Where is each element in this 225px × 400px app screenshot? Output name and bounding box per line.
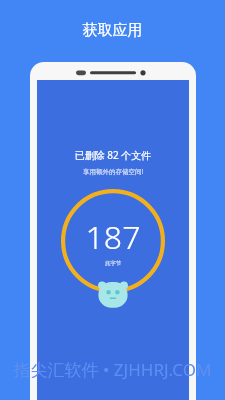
button[interactable]: Freed space 187 megabytes xyxy=(61,189,165,293)
staticText: 享用额外的存储空间! xyxy=(37,167,189,176)
staticText: 兆字节 xyxy=(61,260,165,267)
staticText: 获取应用 xyxy=(0,21,225,40)
staticText: 指尖汇软件 • ZJHHRJ.COM xyxy=(0,358,225,381)
staticText: 已删除 82 个文件 xyxy=(37,148,189,162)
staticText: 187 xyxy=(61,215,165,259)
